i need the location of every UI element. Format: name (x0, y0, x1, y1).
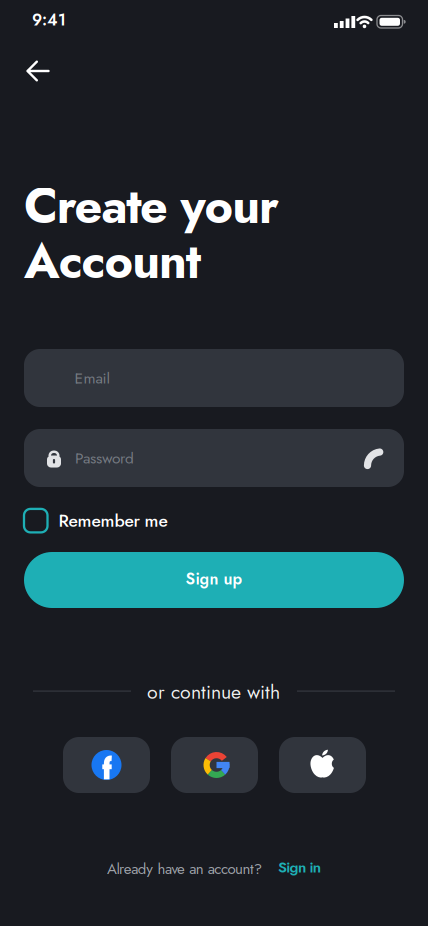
button[interactable]: Remember me (24, 506, 167, 535)
staticText: Sign up (185, 567, 242, 590)
staticText: Email (74, 367, 110, 389)
button[interactable]: Show password (358, 443, 388, 473)
staticText: or continue with (147, 678, 280, 706)
button[interactable]: Sign up (24, 552, 404, 608)
staticText: Password (75, 447, 134, 469)
staticText: 9:41 (32, 8, 66, 32)
staticText: Account (24, 226, 201, 296)
button[interactable]: Continue with Apple (279, 737, 366, 793)
button[interactable]: Back (14, 51, 62, 91)
staticText: Create your (24, 171, 279, 241)
button[interactable]: Continue with Google (171, 737, 258, 793)
staticText: Remember me (58, 508, 167, 533)
button[interactable]: Continue with Facebook (63, 737, 150, 793)
button[interactable]: Sign in (278, 856, 321, 878)
staticText: Already have an account? (107, 858, 262, 880)
staticText: Sign in (278, 856, 321, 878)
